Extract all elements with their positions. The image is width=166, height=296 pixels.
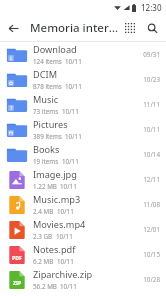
- staticText: 10/11: [56, 232, 73, 241]
- staticText: 10/11: [57, 207, 74, 216]
- staticText: 1.22 MB: [33, 182, 57, 191]
- staticText: 10/11: [62, 157, 79, 166]
- staticText: ZIP: [13, 279, 22, 286]
- button[interactable]: Music: [0, 92, 166, 117]
- button[interactable]: ZIP: [0, 267, 166, 292]
- staticText: 10/11: [60, 282, 77, 291]
- staticText: 10/15: [143, 250, 160, 259]
- staticText: 10/23: [143, 75, 160, 84]
- staticText: DCIM: [33, 68, 57, 81]
- staticText: Image.jpg: [33, 168, 77, 181]
- staticText: Pictures: [33, 118, 68, 131]
- staticText: Music: [33, 93, 59, 106]
- staticText: 124 items: [33, 57, 62, 66]
- staticText: 11/11: [143, 100, 160, 109]
- staticText: Memoria interna: [30, 20, 119, 36]
- staticText: 10/11: [60, 182, 77, 191]
- button[interactable]: Pictures: [0, 117, 166, 142]
- staticText: PDF: [12, 254, 22, 261]
- staticText: Movies.mp4: [33, 218, 86, 231]
- button[interactable]: PDF: [0, 242, 166, 267]
- staticText: 2.4 MB: [33, 207, 54, 216]
- button[interactable]: DCIM: [0, 67, 166, 92]
- staticText: 10/11: [62, 107, 79, 116]
- staticText: 56.2 MB: [33, 282, 57, 291]
- staticText: 10/11: [143, 125, 160, 134]
- button[interactable]: Books: [0, 142, 166, 167]
- staticText: 10/11: [57, 257, 74, 266]
- button[interactable]: Download: [0, 42, 166, 67]
- staticText: 10/11: [65, 82, 82, 91]
- staticText: Notes.pdf: [33, 243, 76, 256]
- staticText: 10/14: [143, 150, 160, 159]
- staticText: Ziparchive.zip: [33, 268, 93, 281]
- button[interactable]: Music.mp3: [0, 192, 166, 217]
- staticText: 10/11: [65, 132, 82, 141]
- button[interactable]: Image.jpg: [0, 167, 166, 192]
- staticText: 12/11: [143, 175, 160, 184]
- staticText: 878 items: [33, 82, 62, 91]
- button[interactable]: Movies.mp4: [0, 217, 166, 242]
- button[interactable]: Search: [141, 17, 163, 39]
- button[interactable]: Grid view: [119, 17, 141, 39]
- staticText: 10/11: [65, 57, 82, 66]
- staticText: Books: [33, 143, 60, 156]
- staticText: 6.2 MB: [33, 257, 54, 266]
- staticText: 09/31: [143, 50, 160, 59]
- staticText: 12/01: [143, 225, 160, 234]
- staticText: Music.mp3: [33, 193, 81, 206]
- staticText: Download: [33, 43, 77, 56]
- staticText: 11/08: [143, 200, 160, 209]
- staticText: 73 items: [33, 107, 59, 116]
- staticText: 2.3 GB: [33, 232, 53, 241]
- staticText: 19 items: [33, 157, 59, 166]
- staticText: 10/28: [143, 275, 160, 284]
- staticText: 12:30: [141, 2, 162, 13]
- staticText: 389 items: [33, 132, 62, 141]
- button[interactable]: Back: [0, 15, 26, 41]
